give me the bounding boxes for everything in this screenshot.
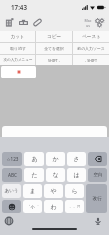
button[interactable]: Settings: [94, 17, 106, 29]
button[interactable]: 改行: [86, 184, 107, 213]
staticText: 17:43: [11, 3, 27, 11]
staticText: わ: [50, 203, 57, 211]
button[interactable]: Voice input: [94, 217, 102, 225]
staticText: あいう: [4, 188, 19, 194]
staticText: SHIFT -: [48, 58, 60, 63]
button[interactable]: ま: [23, 184, 42, 198]
staticText: 改行: [92, 196, 102, 202]
staticText: あ: [31, 155, 38, 163]
button[interactable]: Camera: [19, 18, 28, 27]
button[interactable]: あ: [24, 152, 44, 166]
button[interactable]: ☆123: [2, 152, 22, 166]
staticText: us: [86, 23, 90, 28]
button[interactable]: 前の入力ソース: [73, 43, 109, 54]
button[interactable]: ゛小゜: [23, 200, 42, 213]
button[interactable]: カット: [0, 31, 35, 42]
staticText: 次の入力メニュー: [3, 58, 33, 63]
button[interactable]: Suggestion: [1, 66, 36, 78]
staticText: Mac: [84, 18, 92, 23]
button[interactable]: た: [24, 168, 44, 182]
button[interactable]: 、。?!: [65, 200, 84, 213]
staticText: な: [52, 171, 59, 179]
button[interactable]: Link: [33, 18, 42, 27]
button[interactable]: か: [46, 152, 65, 166]
button[interactable]: Change keyboard: [5, 217, 13, 225]
button[interactable]: 空白: [88, 168, 107, 182]
staticText: 空白: [93, 172, 103, 178]
button[interactable]: あいう: [2, 184, 21, 198]
button[interactable]: ペースト: [73, 31, 109, 42]
button[interactable]: 全てを選択: [36, 43, 72, 54]
staticText: 前の入力ソース: [77, 46, 105, 51]
button[interactable]: は: [67, 168, 86, 182]
staticText: ゛小゜: [26, 204, 39, 209]
button[interactable]: ら: [65, 184, 84, 198]
staticText: ら: [71, 187, 78, 195]
staticText: 、。?!: [69, 204, 80, 209]
staticText: ABC: [8, 172, 17, 178]
staticText: た: [31, 171, 38, 179]
staticText: 全てを選択: [44, 46, 64, 51]
button[interactable]: や: [44, 184, 63, 198]
staticText: は: [73, 171, 80, 179]
staticText: か: [52, 155, 59, 163]
button[interactable]: SHIFT -: [36, 55, 72, 65]
staticText: ペースト: [82, 34, 101, 40]
staticText: ま: [29, 187, 36, 195]
button[interactable]: Emoji: [2, 200, 21, 213]
staticText: さ: [73, 155, 80, 163]
staticText: - SHIFT: [85, 58, 97, 63]
button[interactable]: コピー: [36, 31, 72, 42]
staticText: や: [50, 187, 57, 195]
button[interactable]: わ: [44, 200, 63, 213]
button[interactable]: - SHIFT: [73, 55, 109, 65]
staticText: 取り消す: [10, 46, 26, 51]
button[interactable]: な: [46, 168, 65, 182]
button[interactable]: 取り消す: [0, 43, 35, 54]
button[interactable]: Delete: [88, 152, 107, 166]
button[interactable]: さ: [67, 152, 86, 166]
button[interactable]: ABC: [2, 168, 22, 182]
staticText: コピー: [47, 34, 61, 40]
staticText: ☆123: [6, 156, 19, 162]
staticText: カット: [10, 34, 25, 40]
button[interactable]: Calculator: [5, 18, 14, 27]
button[interactable]: 次の入力メニュー: [0, 55, 35, 65]
